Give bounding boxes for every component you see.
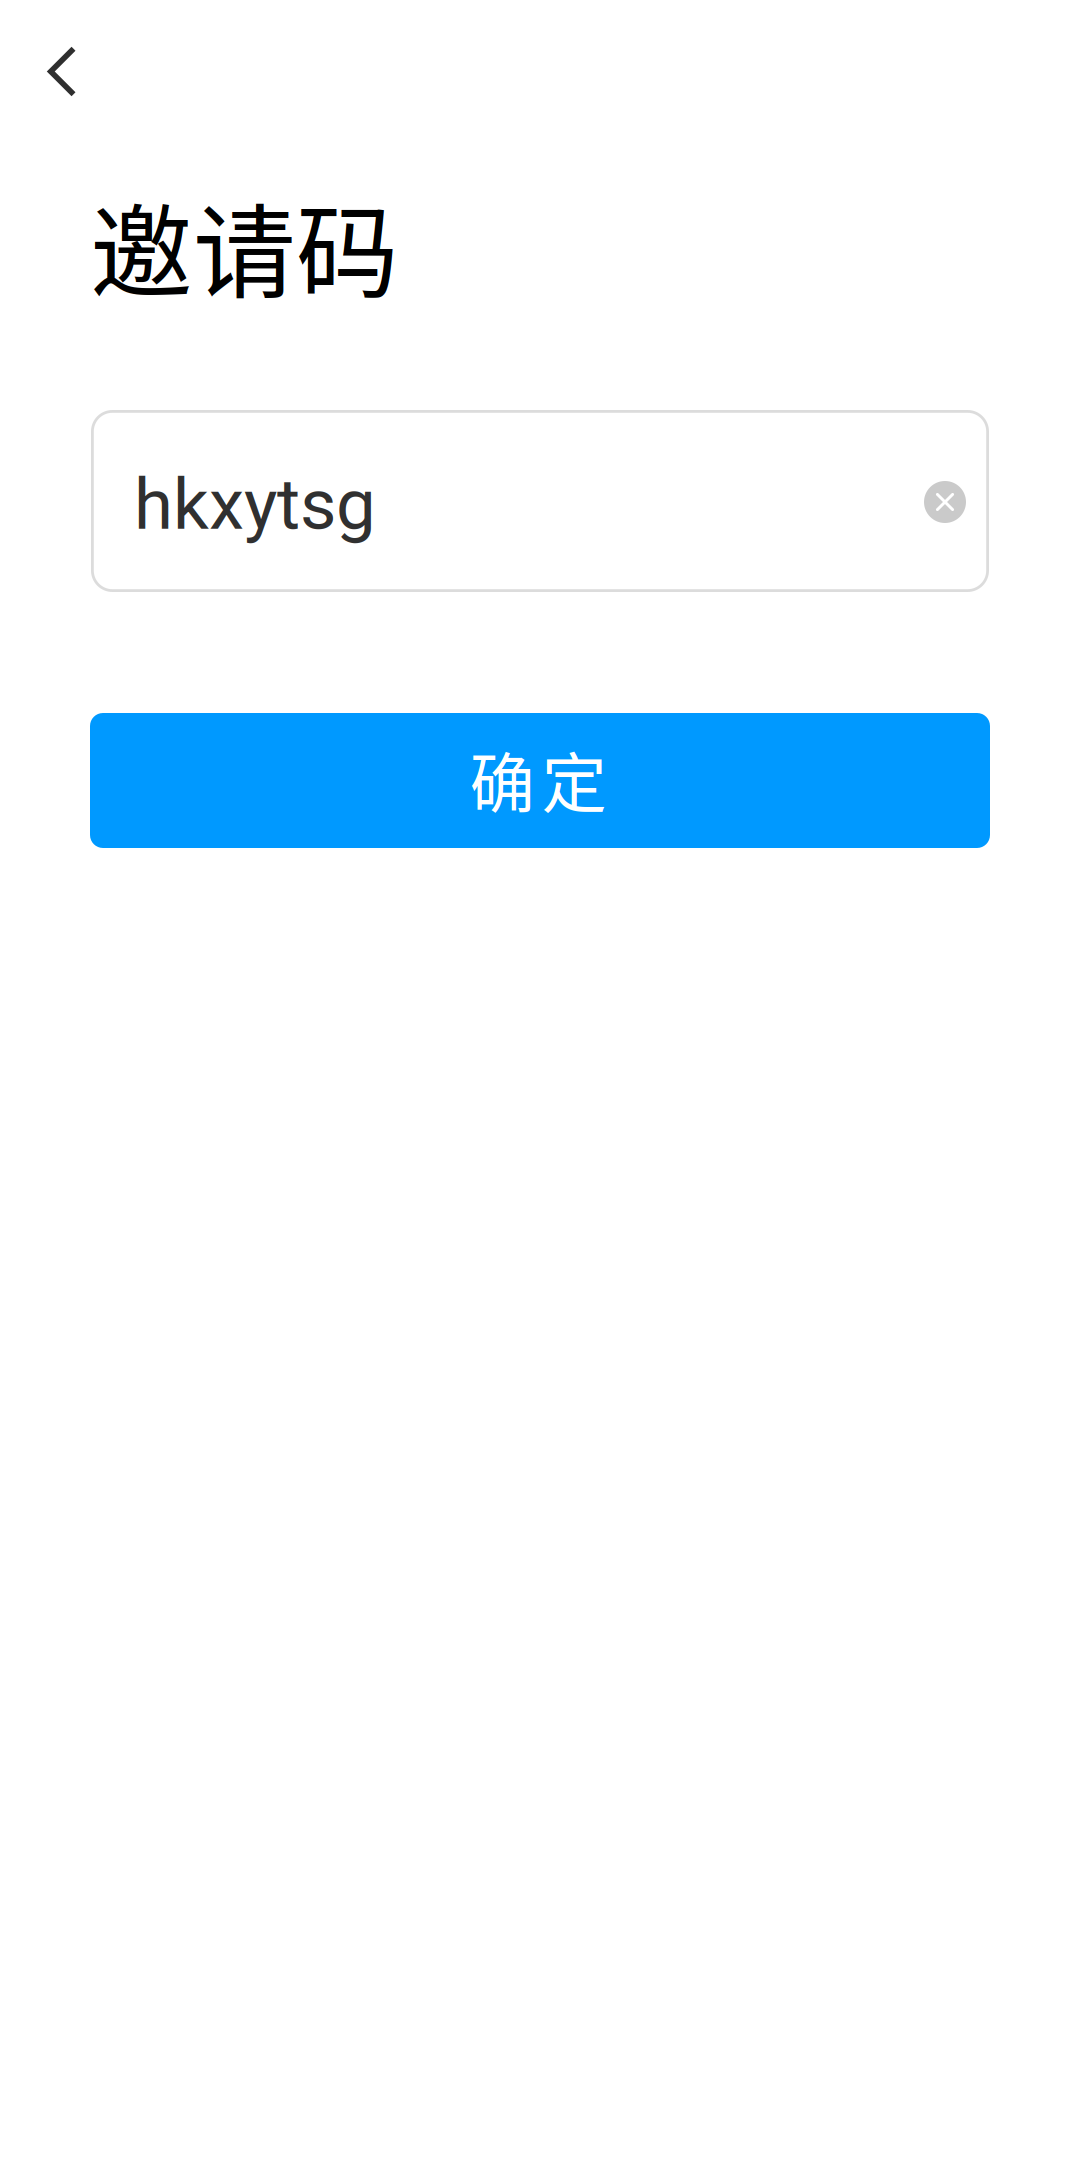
staticText: hkxytsg [134, 463, 376, 546]
staticText: 邀请码 [90, 171, 399, 320]
button[interactable]: 确定 [90, 713, 990, 848]
button[interactable]: Clear invite code [904, 461, 986, 543]
staticText: 定 [541, 731, 606, 826]
button[interactable]: Invite code, hkxytsg [91, 410, 989, 592]
staticText: 确 [469, 731, 534, 826]
button[interactable]: Back [14, 24, 114, 124]
